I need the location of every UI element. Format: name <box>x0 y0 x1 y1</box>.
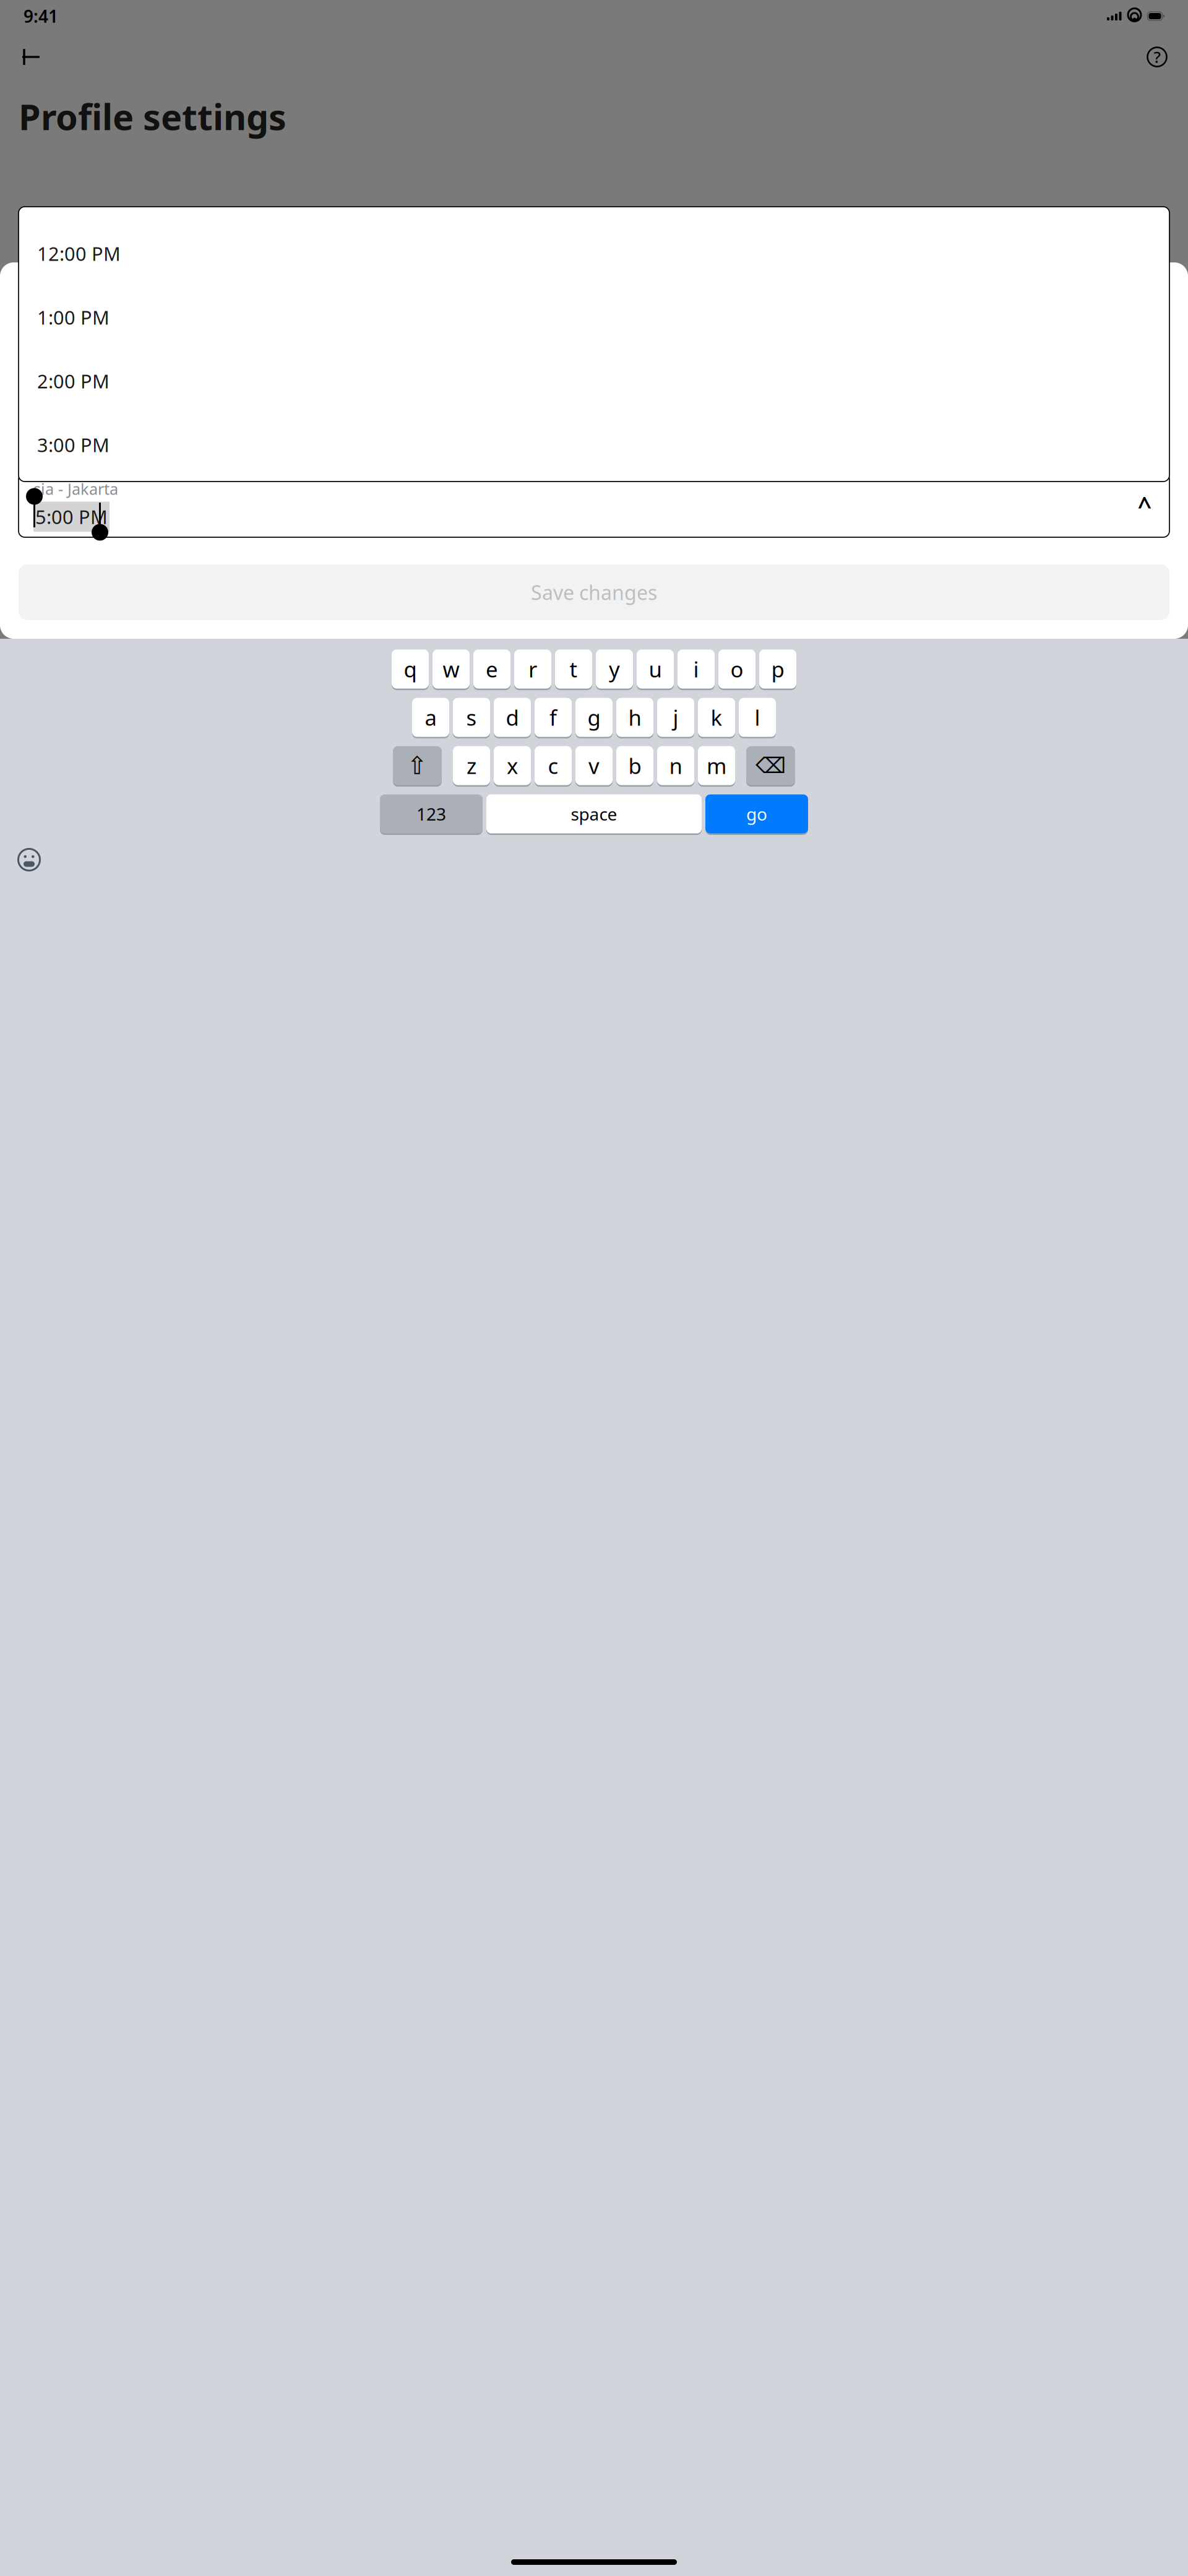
staticText: 3:00 PM <box>37 432 110 457</box>
staticText: i <box>693 655 699 683</box>
button[interactable]: Save changes <box>19 564 1169 620</box>
staticText: Save changes <box>531 579 657 606</box>
button[interactable]: y <box>596 649 633 689</box>
button[interactable]: go <box>705 793 808 834</box>
staticText: 12:00 PM <box>37 241 121 266</box>
button[interactable]: f <box>535 697 572 738</box>
button[interactable]: g <box>575 697 613 738</box>
button[interactable]: sia - Jakarta <box>19 473 1169 537</box>
staticText: m <box>707 751 726 780</box>
button[interactable]: space <box>486 793 702 834</box>
staticText: q <box>404 655 417 683</box>
staticText: ⇧ <box>407 752 428 780</box>
button[interactable]: u <box>637 649 674 689</box>
staticText: 9:41 <box>24 5 58 28</box>
staticText: l <box>755 703 760 732</box>
button[interactable]: h <box>616 697 653 738</box>
staticText: ? <box>1154 47 1160 67</box>
staticText: s <box>466 703 477 732</box>
button[interactable]: 2:00 PM <box>19 349 1169 413</box>
button[interactable]: i <box>678 649 715 689</box>
button[interactable]: x <box>494 745 531 786</box>
staticText: k <box>711 703 722 732</box>
staticText: sia - Jakarta <box>33 478 118 499</box>
button[interactable]: e <box>473 649 510 689</box>
button[interactable]: t <box>555 649 592 689</box>
button[interactable]: z <box>453 745 490 786</box>
button[interactable]: 3:00 PM <box>19 413 1169 477</box>
staticText: b <box>628 751 641 780</box>
staticText: o <box>730 655 743 683</box>
button[interactable]: 12:00 PM <box>19 222 1169 285</box>
staticText: c <box>548 751 558 780</box>
button[interactable]: Delete <box>746 745 795 786</box>
button[interactable]: b <box>616 745 653 786</box>
staticText: d <box>506 703 519 732</box>
button[interactable]: s <box>453 697 490 738</box>
button[interactable]: 1:00 PM <box>19 285 1169 349</box>
staticText: t <box>570 655 578 683</box>
staticText: h <box>628 703 641 732</box>
staticText: r <box>528 655 537 683</box>
staticText: u <box>649 655 662 683</box>
button[interactable]: Back <box>20 48 42 66</box>
button[interactable]: l <box>739 697 776 738</box>
button[interactable]: c <box>535 745 572 786</box>
button[interactable]: p <box>759 649 796 689</box>
staticText: go <box>746 802 767 825</box>
button[interactable]: q <box>392 649 429 689</box>
button[interactable]: r <box>514 649 551 689</box>
button[interactable]: d <box>494 697 531 738</box>
button[interactable]: j <box>657 697 694 738</box>
staticText: 1:00 PM <box>37 305 110 330</box>
staticText: p <box>771 655 784 683</box>
staticText: Profile settings <box>19 93 286 140</box>
staticText: ^ <box>1138 489 1152 521</box>
button[interactable]: v <box>575 745 613 786</box>
staticText: y <box>609 655 620 683</box>
staticText: ⌫ <box>755 753 786 778</box>
staticText: space <box>571 802 617 825</box>
staticText: a <box>425 703 437 732</box>
staticText: v <box>588 751 600 780</box>
button[interactable]: Help <box>1146 46 1168 68</box>
staticText: g <box>588 703 600 732</box>
staticText: 2:00 PM <box>37 368 110 394</box>
staticText: x <box>507 751 518 780</box>
button[interactable]: w <box>433 649 470 689</box>
button[interactable]: 123 <box>380 793 483 834</box>
staticText: n <box>669 751 682 780</box>
staticText: e <box>486 655 498 683</box>
staticText: 123 <box>416 802 446 825</box>
button[interactable]: Shift <box>393 745 442 786</box>
button[interactable]: m <box>698 745 735 786</box>
button[interactable]: o <box>718 649 755 689</box>
staticText: 5:00 PM <box>35 504 108 529</box>
button[interactable]: Emoji keyboard <box>15 845 43 874</box>
button[interactable]: k <box>698 697 735 738</box>
staticText: j <box>673 703 678 732</box>
staticText: w <box>443 655 459 683</box>
button[interactable]: n <box>657 745 694 786</box>
button[interactable]: a <box>412 697 449 738</box>
staticText: z <box>467 751 476 780</box>
staticText: f <box>549 703 557 732</box>
